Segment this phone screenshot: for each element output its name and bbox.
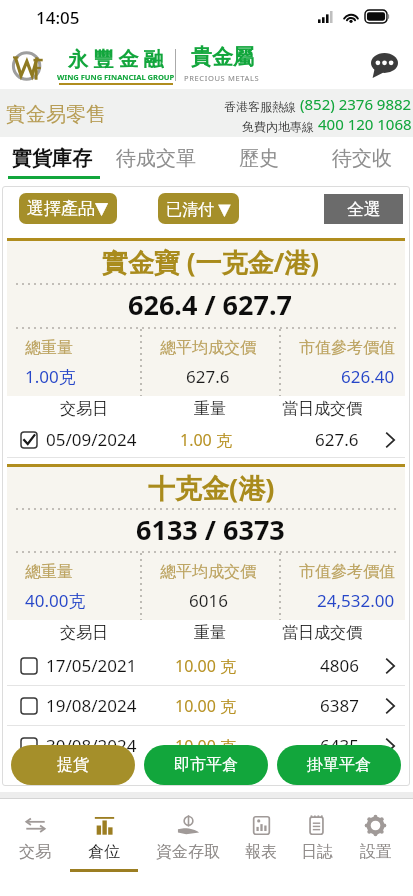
staticText: 10.00 克 <box>175 655 237 677</box>
staticText: 10.00 克 <box>175 695 237 717</box>
staticText: 總重量 <box>25 562 73 582</box>
button[interactable]: 歷史 <box>207 137 310 181</box>
staticText: 19/08/2024 <box>46 694 137 717</box>
staticText: 14:05 <box>36 6 80 29</box>
staticText: 1.00克 <box>25 365 76 388</box>
staticText: 6387 <box>320 694 359 717</box>
button[interactable]: 選擇產品▼ <box>19 193 117 224</box>
staticText: 市值參考價值 <box>299 338 395 358</box>
button[interactable]: 已清付 ▼ <box>158 193 239 224</box>
staticText: 香港客服熱線 <box>224 98 300 114</box>
staticText: 十克金(港) <box>148 469 275 506</box>
staticText: 1.00 克 <box>180 429 232 451</box>
staticText: 倉位 <box>88 842 120 862</box>
staticText: 10.00 克 <box>175 735 237 757</box>
staticText: 永 豐 金 融 <box>68 45 164 72</box>
staticText: 提貨 <box>57 755 89 775</box>
button[interactable]: 待交收 <box>310 137 413 181</box>
staticText: 總平均成交價 <box>160 562 256 582</box>
staticText: 實金易零售 <box>6 102 106 127</box>
staticText: 627.6 <box>186 365 230 388</box>
staticText: 400 120 1068 <box>318 114 412 134</box>
staticText: 當日成交價 <box>282 399 362 419</box>
staticText: 歷史 <box>239 146 279 171</box>
button[interactable]: Chat <box>366 47 402 83</box>
staticText: 全選 <box>347 199 381 220</box>
staticText: 6133 / 6373 <box>136 511 285 548</box>
staticText: 30/08/2024 <box>46 734 137 757</box>
staticText: 掛單平倉 <box>307 755 371 775</box>
staticText: 重量 <box>194 623 226 643</box>
staticText: 24,532.00 <box>317 589 395 612</box>
button[interactable]: 設置 <box>349 799 402 896</box>
button[interactable]: 倉位 <box>70 799 138 896</box>
button[interactable]: 日誌 <box>284 799 349 896</box>
button[interactable]: 實貨庫存 <box>0 137 104 181</box>
button[interactable]: 掛單平倉 <box>277 745 401 785</box>
staticText: 設置 <box>360 842 392 862</box>
staticText: 當日成交價 <box>282 623 362 643</box>
staticText: 日誌 <box>301 842 333 862</box>
staticText: 重量 <box>194 399 226 419</box>
staticText: 報表 <box>245 842 277 862</box>
button[interactable]: 全選 <box>324 194 403 224</box>
button[interactable]: 提貨 <box>11 745 135 785</box>
staticText: 626.4 / 627.7 <box>128 286 292 323</box>
button[interactable]: 報表 <box>238 799 284 896</box>
staticText: 交易日 <box>60 399 108 419</box>
button[interactable]: 19/08/2024 <box>7 686 405 725</box>
staticText: 待交收 <box>332 146 392 171</box>
staticText: 免費內地專線 <box>242 118 318 134</box>
staticText: 選擇產品▼ <box>27 198 109 219</box>
button[interactable]: 即市平倉 <box>144 745 268 785</box>
staticText: (852) 2376 9882 <box>300 94 412 114</box>
staticText: 6016 <box>189 589 228 612</box>
button[interactable]: 資金存取 <box>138 799 238 896</box>
staticText: 資金存取 <box>156 842 220 862</box>
staticText: 已清付 ▼ <box>166 198 231 220</box>
staticText: 626.40 <box>341 365 395 388</box>
button[interactable]: 交易 <box>0 799 70 896</box>
button[interactable]: 30/08/2024 <box>7 726 405 765</box>
button[interactable]: 待成交單 <box>104 137 207 181</box>
staticText: 交易日 <box>60 623 108 643</box>
button[interactable]: 05/09/2024 <box>7 422 405 457</box>
staticText: WING FUNG FINANCIAL GROUP <box>57 72 175 82</box>
staticText: 實金寶 (一克金/港) <box>102 244 320 280</box>
staticText: 17/05/2021 <box>46 654 137 677</box>
staticText: 總重量 <box>25 338 73 358</box>
staticText: PRECIOUS METALS <box>184 73 260 83</box>
staticText: 即市平倉 <box>174 755 238 775</box>
staticText: 4806 <box>320 654 359 677</box>
staticText: 05/09/2024 <box>46 428 137 451</box>
staticText: 貴金屬 <box>191 44 254 70</box>
staticText: 6435 <box>320 734 359 757</box>
staticText: 總平均成交價 <box>160 338 256 358</box>
staticText: 627.6 <box>315 428 359 451</box>
staticText: 交易 <box>19 842 51 862</box>
staticText: 40.00克 <box>25 589 86 612</box>
staticText: 實貨庫存 <box>12 146 92 171</box>
staticText: 市值參考價值 <box>299 562 395 582</box>
staticText: 待成交單 <box>116 146 196 171</box>
button[interactable]: 17/05/2021 <box>7 646 405 685</box>
